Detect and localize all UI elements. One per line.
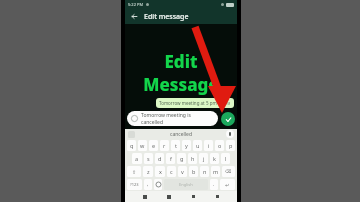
button[interactable]: Nav 3 (213, 192, 222, 201)
button[interactable]: Tomorrow meeting at 5 pm (156, 98, 234, 108)
staticText: p (229, 142, 233, 149)
staticText: l (225, 155, 227, 162)
button[interactable]: q (127, 140, 136, 151)
button[interactable]: . (210, 179, 218, 190)
button[interactable]: , (144, 179, 152, 190)
staticText: u (196, 142, 200, 149)
button[interactable]: Enter (220, 179, 235, 190)
staticText: m (213, 168, 219, 175)
button[interactable]: ?123 (127, 179, 142, 190)
staticText: i (208, 142, 210, 149)
staticText: r (163, 142, 166, 149)
button[interactable]: Tomorrow meeting is cancelled (127, 111, 218, 126)
button[interactable]: Nav 2 (189, 192, 198, 201)
staticText: English (179, 182, 193, 187)
button[interactable]: s (144, 153, 153, 164)
staticText: o (218, 142, 222, 149)
button[interactable]: Space (164, 179, 208, 190)
staticText: f (170, 155, 172, 162)
button[interactable]: Shift (127, 166, 141, 177)
staticText: k (213, 155, 216, 162)
staticText: y (185, 142, 188, 149)
button[interactable]: l (221, 153, 230, 164)
button[interactable]: g (177, 153, 186, 164)
button[interactable]: i (204, 140, 213, 151)
staticText: x (159, 168, 162, 175)
staticText: Tomorrow meeting is cancelled (141, 112, 214, 126)
button[interactable]: w (138, 140, 147, 151)
staticText: q (130, 142, 134, 149)
button[interactable]: p (226, 140, 235, 151)
button[interactable]: o (215, 140, 224, 151)
staticText: ↵ (225, 182, 230, 188)
button[interactable]: r (160, 140, 169, 151)
button[interactable]: Voice input (226, 130, 234, 138)
button[interactable]: Send edited message (221, 112, 235, 126)
staticText: 5:22 PM (128, 2, 144, 7)
staticText: v (181, 168, 184, 175)
staticText: Tomorrow meeting at 5 pm (159, 100, 217, 106)
staticText: ?123 (130, 182, 139, 187)
staticText: , (147, 181, 149, 188)
button[interactable]: c (167, 166, 176, 177)
button[interactable]: a (132, 153, 142, 164)
button[interactable]: h (188, 153, 197, 164)
staticText: s (147, 155, 150, 162)
button[interactable]: Back (129, 11, 140, 22)
staticText: c (170, 168, 173, 175)
staticText: w (140, 142, 145, 149)
button[interactable]: Nav 0 (140, 192, 149, 201)
button[interactable]: k (210, 153, 219, 164)
staticText: 4:35 PM (219, 102, 231, 106)
button[interactable]: u (193, 140, 202, 151)
button[interactable]: m (211, 166, 220, 177)
staticText: b (192, 168, 196, 175)
button[interactable]: x (155, 166, 165, 177)
button[interactable]: f (166, 153, 175, 164)
staticText: ⌫ (225, 169, 232, 174)
button[interactable]: b (189, 166, 198, 177)
staticText: e (152, 142, 156, 149)
button[interactable]: v (178, 166, 187, 177)
button[interactable]: n (200, 166, 209, 177)
button[interactable]: t (171, 140, 180, 151)
button[interactable]: Emoji (154, 179, 162, 190)
staticText: t (175, 142, 177, 149)
button[interactable]: z (143, 166, 153, 177)
button[interactable]: Nav 1 (164, 192, 173, 201)
button[interactable]: e (149, 140, 158, 151)
staticText: j (203, 155, 205, 162)
button[interactable]: j (199, 153, 208, 164)
staticText: cancelled (170, 131, 192, 138)
staticText: Edit message (144, 12, 189, 22)
staticText: h (191, 155, 195, 162)
button[interactable]: d (155, 153, 164, 164)
staticText: g (180, 155, 184, 162)
staticText: . (213, 181, 215, 188)
staticText: z (147, 168, 150, 175)
staticText: d (158, 155, 162, 162)
staticText: ⇧ (132, 169, 137, 175)
button[interactable]: Backspace (222, 166, 235, 177)
staticText: Edit Message (125, 50, 237, 96)
staticText: a (135, 155, 139, 162)
staticText: n (203, 168, 207, 175)
button[interactable]: y (182, 140, 191, 151)
